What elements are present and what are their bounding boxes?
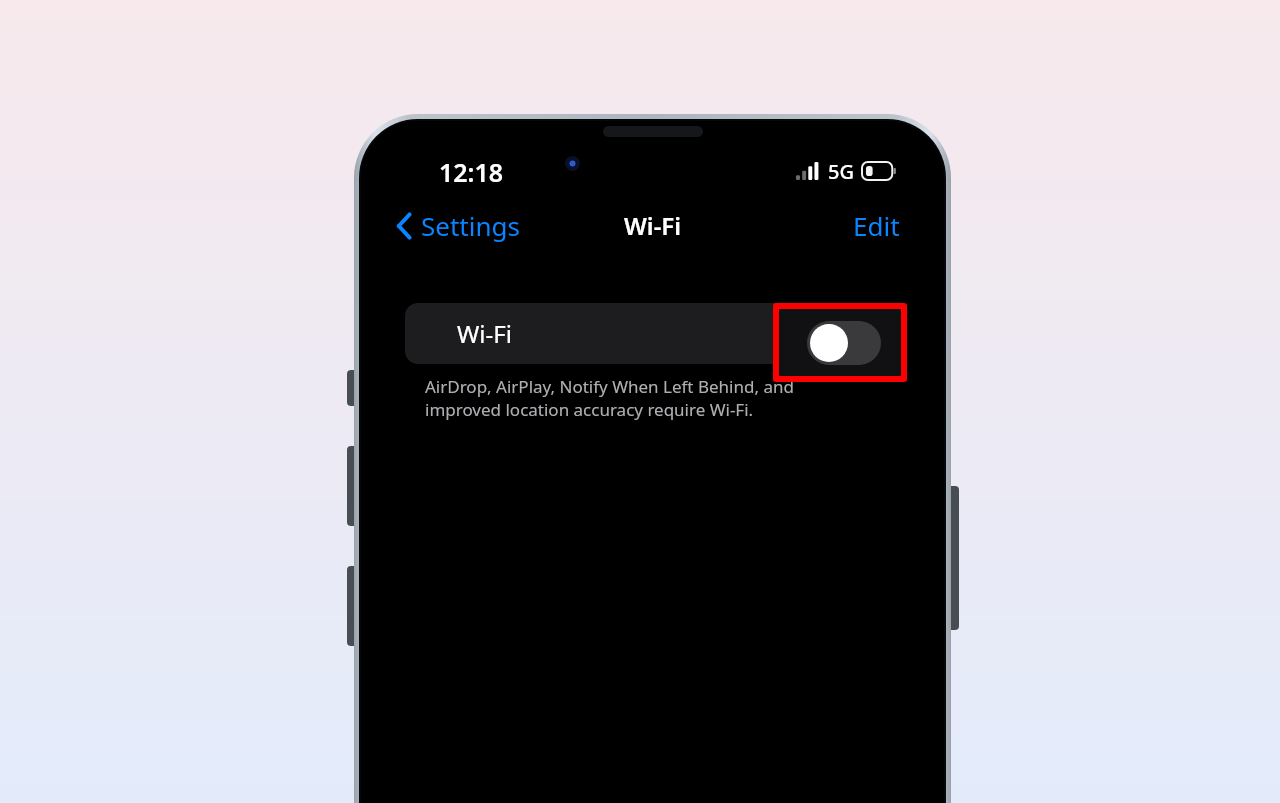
staticText: Wi-Fi <box>457 317 512 350</box>
staticText: 12:18 <box>439 155 504 187</box>
staticText: Wi-Fi <box>624 209 682 242</box>
staticText: Edit <box>853 208 900 243</box>
staticText: Settings <box>421 208 520 243</box>
staticText: AirDrop, AirPlay, Notify When Left Behin… <box>425 375 866 421</box>
staticText: 5G <box>828 158 854 185</box>
button[interactable]: Edit <box>849 204 904 247</box>
button[interactable]: Wi-Fi toggle, off <box>807 321 881 365</box>
button[interactable]: Wi-Fi <box>405 303 900 364</box>
button[interactable]: Wi-Fi toggle, off <box>784 312 858 356</box>
button[interactable]: Settings <box>392 204 524 247</box>
